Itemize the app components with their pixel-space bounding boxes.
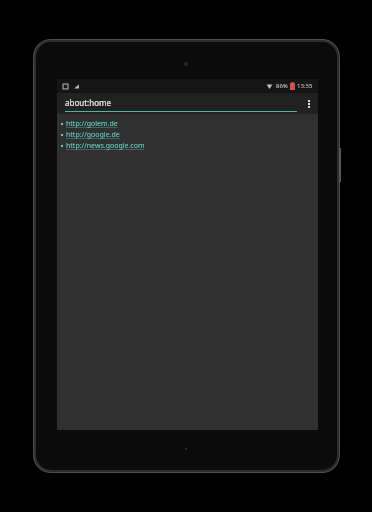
button[interactable]: More options [300, 93, 318, 114]
staticText: 86% [276, 82, 288, 90]
button[interactable]: http://google.de [57, 129, 318, 140]
staticText: http://google.de [66, 130, 120, 140]
staticText: 13:55 [297, 82, 313, 90]
staticText: about:home [65, 97, 111, 108]
staticText: http://golem.de [66, 119, 118, 129]
button[interactable]: http://news.google.com [57, 140, 318, 151]
button[interactable]: http://golem.de [57, 118, 318, 129]
staticText: http://news.google.com [66, 141, 145, 151]
